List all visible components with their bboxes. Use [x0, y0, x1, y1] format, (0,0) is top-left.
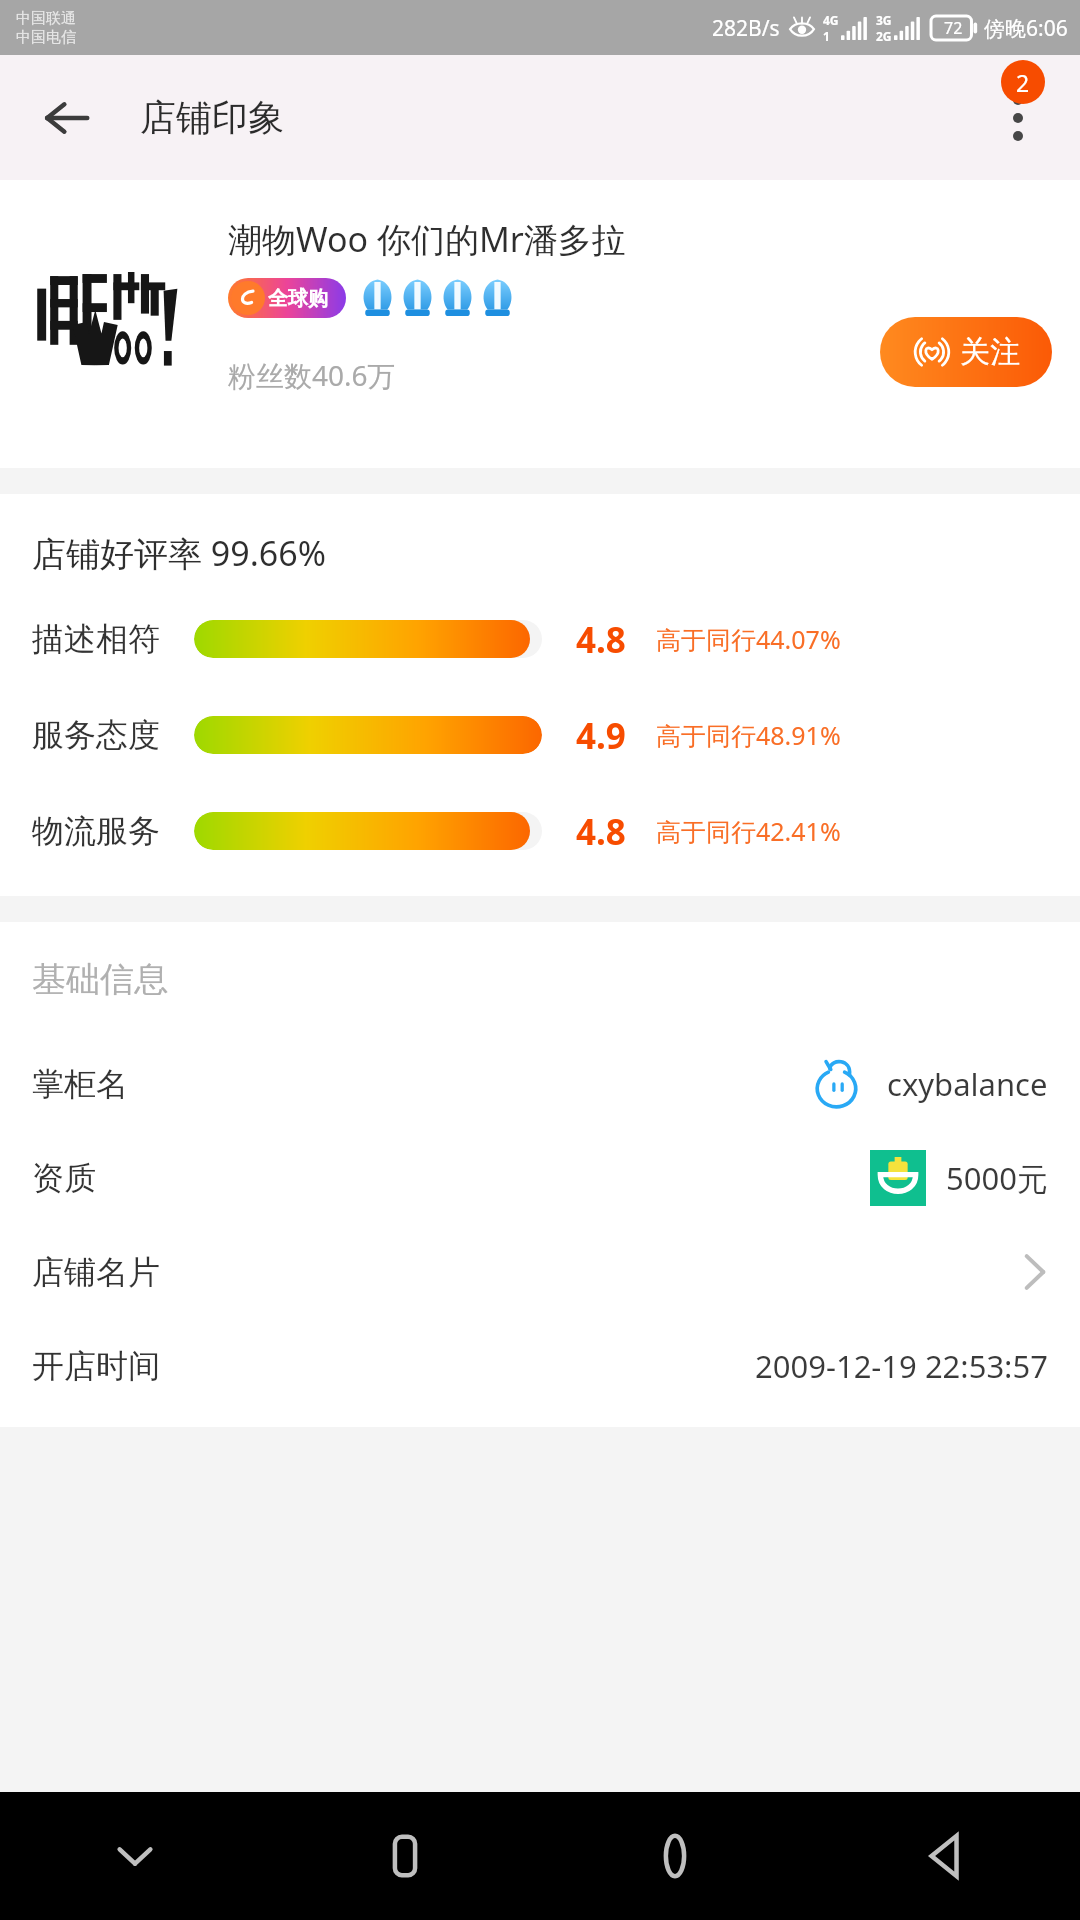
staticText: 2G	[876, 28, 892, 44]
button[interactable]: 服务态度	[0, 712, 1080, 758]
staticText: 基础信息	[32, 958, 168, 1001]
staticText: 高于同行48.91%	[656, 718, 841, 752]
staticText: 服务态度	[32, 715, 160, 755]
staticText: 2009-12-19 22:53:57	[755, 1345, 1048, 1387]
staticText: 高于同行44.07%	[656, 622, 841, 656]
staticText: 掌柜名	[32, 1064, 128, 1104]
staticText: 中国联通	[16, 9, 76, 28]
staticText: 关注	[960, 333, 1020, 371]
button[interactable]: 资质	[0, 1131, 1080, 1225]
button[interactable]: 开店时间	[0, 1319, 1080, 1413]
button[interactable]: Recent apps	[270, 1792, 540, 1920]
button[interactable]: 物流服务	[0, 808, 1080, 854]
button[interactable]: More options	[976, 76, 1060, 160]
button[interactable]: Hide keyboard	[0, 1792, 270, 1920]
staticText: 中国电信	[16, 28, 76, 47]
staticText: 店铺名片	[32, 1252, 160, 1292]
staticText: 3G	[876, 12, 892, 28]
button[interactable]: 关注	[880, 317, 1052, 387]
button[interactable]: 掌柜名	[0, 1037, 1080, 1131]
staticText: 高于同行42.41%	[656, 814, 841, 848]
staticText: 4.8	[576, 616, 626, 662]
staticText: cxybalance	[887, 1063, 1048, 1105]
button[interactable]: Home	[540, 1792, 810, 1920]
button[interactable]: Back	[34, 85, 100, 151]
button[interactable]: 店铺名片	[0, 1225, 1080, 1319]
staticText: 4.8	[576, 808, 626, 854]
button[interactable]: 描述相符	[0, 616, 1080, 662]
staticText: 潮物Woo 你们的Mr潘多拉	[228, 216, 626, 262]
staticText: 全球购	[268, 286, 328, 311]
staticText: 描述相符	[32, 619, 160, 659]
staticText: 物流服务	[32, 811, 160, 851]
staticText: 开店时间	[32, 1346, 160, 1386]
staticText: 店铺印象	[140, 95, 284, 140]
button[interactable]: Back	[810, 1792, 1080, 1920]
staticText: 傍晚6:06	[984, 14, 1068, 43]
staticText: 粉丝数40.6万	[228, 356, 396, 394]
staticText: 4.9	[576, 712, 626, 758]
staticText: 4G	[823, 12, 839, 28]
staticText: 1	[823, 28, 830, 44]
staticText: 资质	[32, 1158, 96, 1198]
staticText: 72	[944, 17, 963, 39]
staticText: 5000元	[946, 1157, 1048, 1199]
staticText: 店铺好评率 99.66%	[32, 530, 326, 576]
staticText: 282B/s	[712, 14, 780, 43]
staticText: 2	[1016, 67, 1030, 98]
